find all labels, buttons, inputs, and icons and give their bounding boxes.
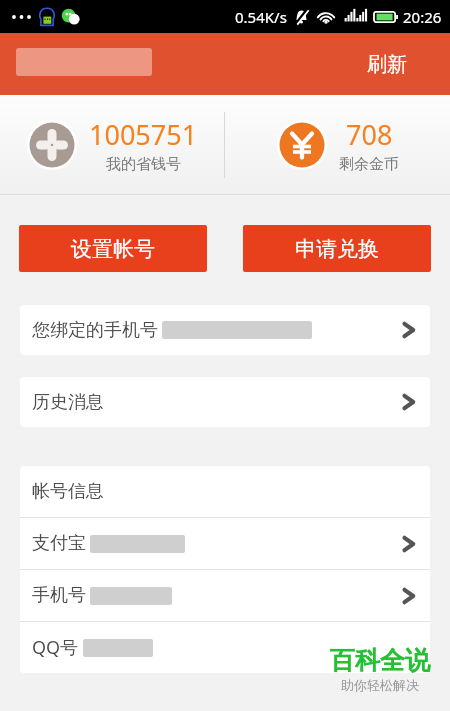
staticText: 帐号信息 [32, 480, 104, 503]
staticText: 刷新 [367, 52, 407, 77]
staticText: 百科全说 [330, 645, 430, 676]
button[interactable]: 1005751 [0, 95, 224, 195]
staticText: 申请兑换 [295, 236, 379, 262]
button[interactable]: 刷新 [324, 33, 450, 95]
button[interactable]: QQ号 [20, 622, 430, 673]
button[interactable]: 历史消息 [20, 377, 430, 427]
staticText: 708 [346, 116, 393, 153]
button[interactable]: 设置帐号 [19, 225, 207, 272]
staticText: 我的省钱号 [106, 155, 181, 174]
staticText: 设置帐号 [71, 236, 155, 262]
staticText: 助你轻松解决 [341, 677, 419, 693]
staticText: 支付宝 [32, 532, 86, 555]
staticText: 1005751 [89, 116, 198, 153]
button[interactable]: 手机号 [20, 570, 430, 621]
button[interactable]: 申请兑换 [243, 225, 431, 272]
staticText: 您绑定的手机号 [32, 319, 158, 342]
staticText: 手机号 [32, 584, 86, 607]
staticText: 0.54K/s [235, 7, 287, 27]
staticText: 历史消息 [32, 391, 104, 414]
staticText: 20:26 [403, 7, 442, 27]
staticText: 剩余金币 [339, 155, 399, 174]
button[interactable]: 您绑定的手机号 [20, 305, 430, 355]
staticText: QQ号 [32, 635, 79, 660]
button[interactable]: 支付宝 [20, 518, 430, 569]
button[interactable]: 708 [225, 95, 450, 195]
button[interactable]: 帐号信息 [20, 466, 430, 517]
